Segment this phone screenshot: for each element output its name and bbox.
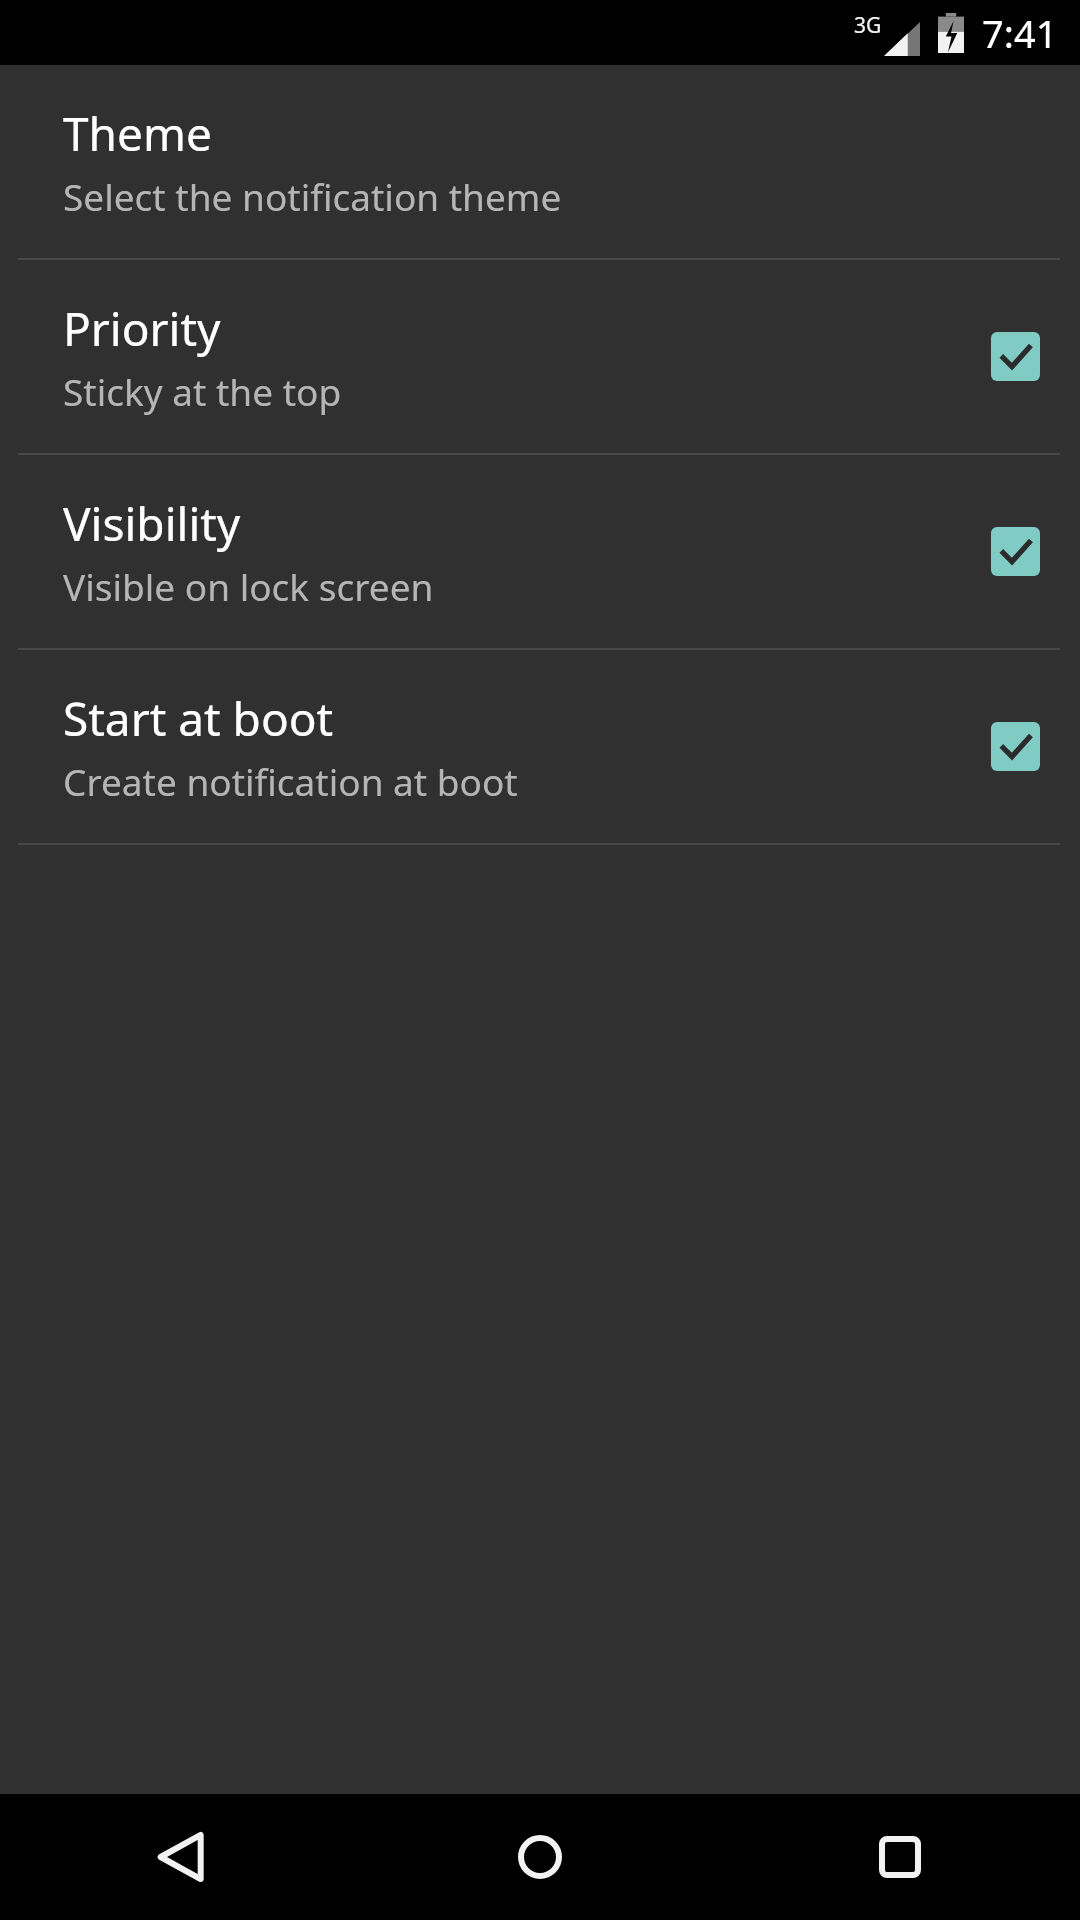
button[interactable]: Back	[0, 1794, 360, 1920]
button[interactable]: Toggle setting	[991, 527, 1040, 576]
button[interactable]: Start at boot	[0, 650, 1080, 843]
button[interactable]: Theme	[0, 65, 1080, 258]
staticText: Visible on lock screen	[63, 561, 434, 611]
staticText: Sticky at the top	[63, 366, 342, 416]
button[interactable]: Recent apps	[720, 1794, 1080, 1920]
staticText: Create notification at boot	[63, 756, 518, 806]
staticText: 3G	[854, 11, 882, 40]
button[interactable]: Visibility	[0, 455, 1080, 648]
button[interactable]: Toggle setting	[991, 332, 1040, 381]
staticText: Start at boot	[63, 687, 334, 750]
staticText: Priority	[63, 297, 221, 360]
button[interactable]: Toggle setting	[991, 722, 1040, 771]
staticText: Visibility	[63, 492, 241, 555]
button[interactable]: Priority	[0, 260, 1080, 453]
staticText: Select the notification theme	[63, 171, 562, 221]
staticText: 7:41	[982, 7, 1058, 59]
button[interactable]: Home	[360, 1794, 720, 1920]
staticText: Theme	[63, 102, 212, 165]
